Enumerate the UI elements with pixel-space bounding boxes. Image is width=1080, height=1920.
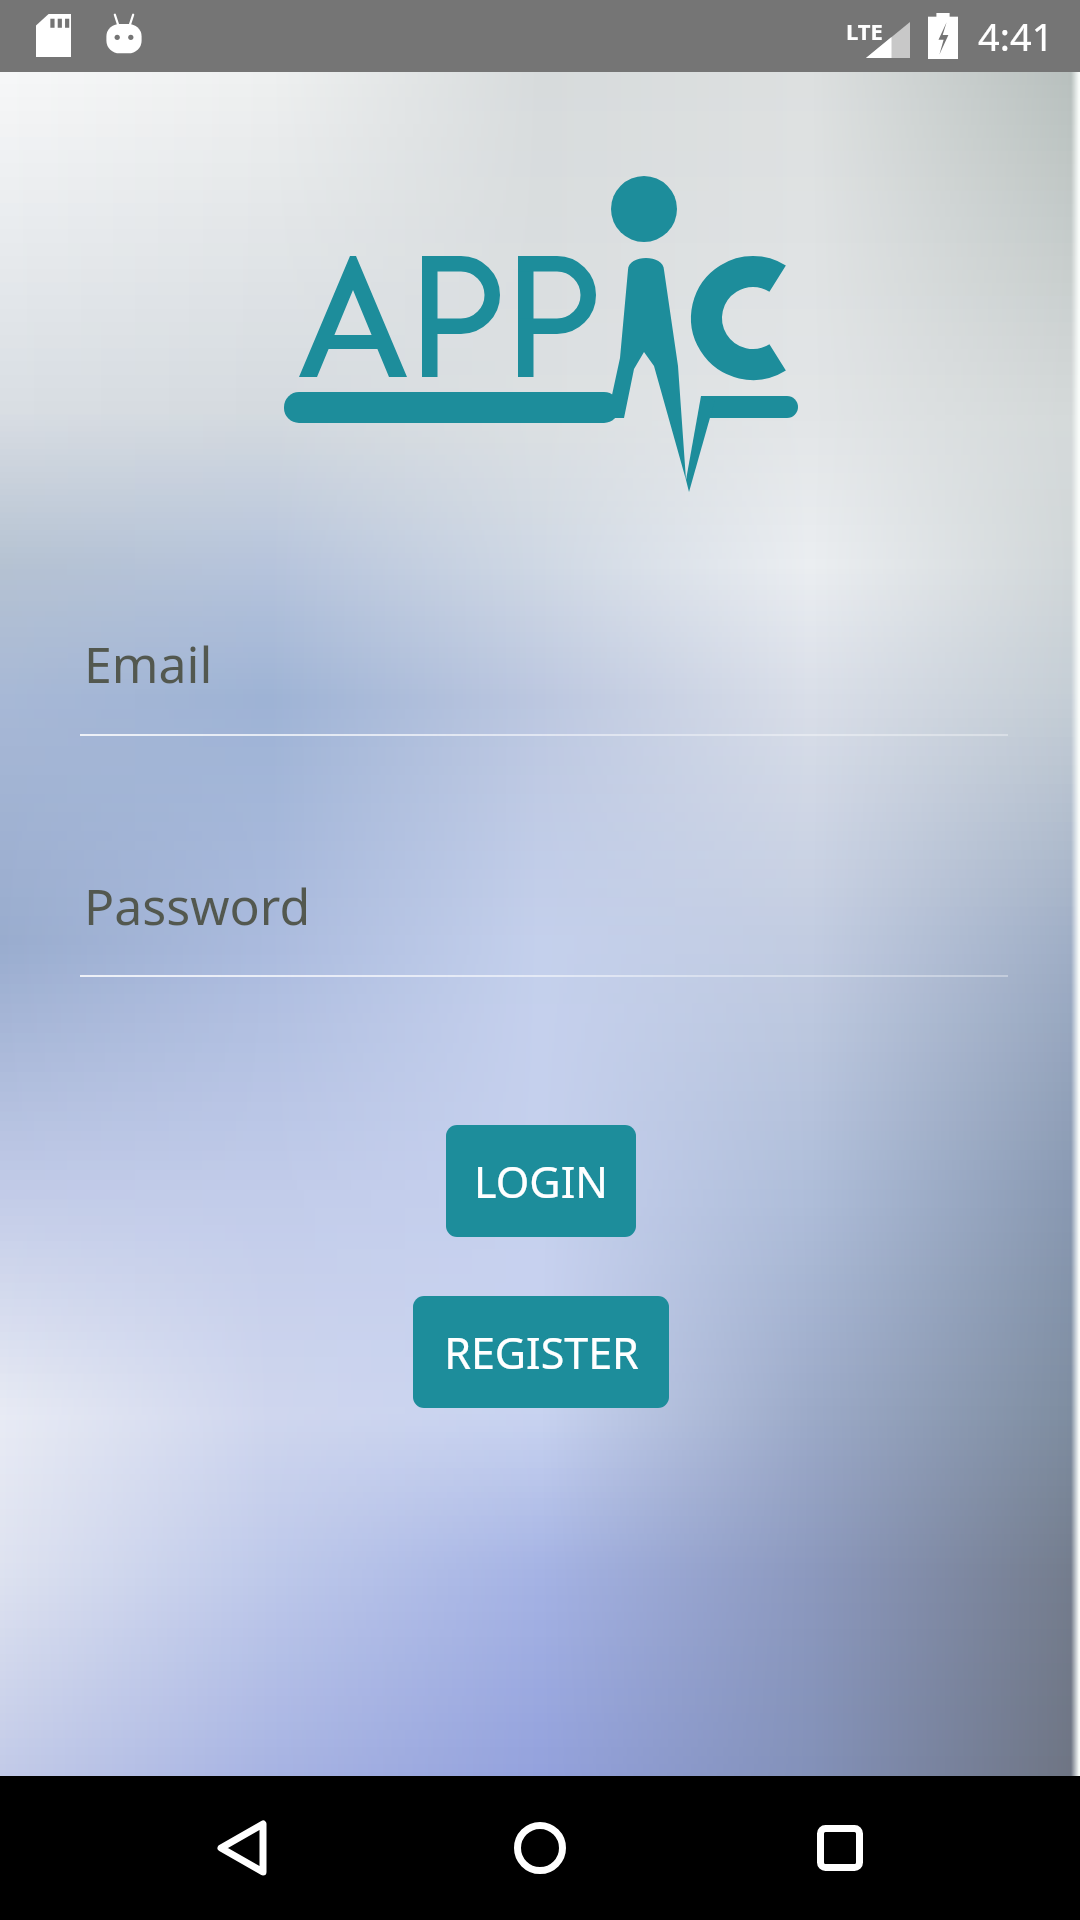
- button[interactable]: Password: [80, 872, 1008, 977]
- staticText: Email: [84, 630, 213, 698]
- button[interactable]: Recent apps: [792, 1800, 888, 1896]
- staticText: Password: [84, 872, 311, 940]
- staticText: REGISTER: [444, 1323, 639, 1382]
- button[interactable]: REGISTER: [413, 1296, 669, 1408]
- button[interactable]: Email: [80, 630, 1008, 736]
- button[interactable]: Home: [492, 1800, 588, 1896]
- button[interactable]: LOGIN: [446, 1125, 636, 1237]
- staticText: LOGIN: [474, 1152, 608, 1211]
- staticText: LTE: [846, 16, 883, 46]
- button[interactable]: Back: [194, 1800, 290, 1896]
- staticText: 4:41: [978, 10, 1054, 62]
